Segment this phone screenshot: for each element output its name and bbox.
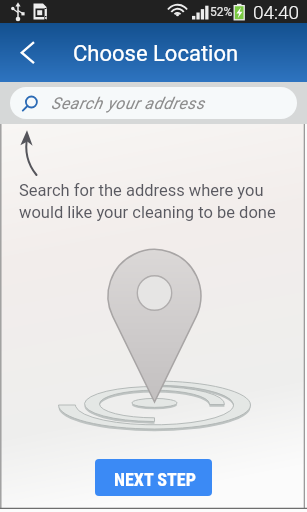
staticText: 52% (210, 5, 233, 19)
staticText: NEXT STEP (114, 469, 196, 490)
staticText: 04:40 (253, 1, 300, 23)
staticText: Search your address (51, 94, 205, 113)
button[interactable]: Search your address (10, 87, 297, 119)
button[interactable]: Back (0, 23, 50, 82)
staticText: Choose Location (73, 41, 239, 67)
button[interactable]: NEXT STEP (95, 459, 212, 496)
staticText: Search for the address where you would l… (19, 181, 276, 222)
